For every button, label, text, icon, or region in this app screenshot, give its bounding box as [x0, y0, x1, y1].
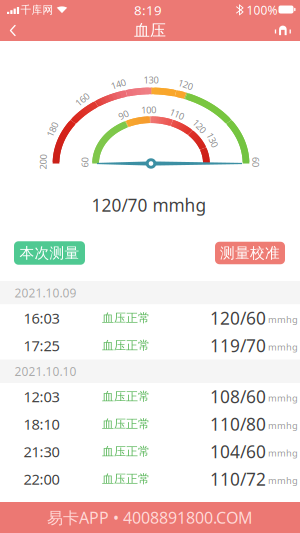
staticText: 90 [118, 108, 128, 121]
staticText: mmhg [268, 419, 298, 432]
staticText: 120/60 [210, 306, 266, 329]
staticText: 22:00 [23, 469, 59, 489]
staticText: 130 [205, 134, 220, 146]
staticText: mmhg [268, 313, 298, 326]
button[interactable]: 12:03 [0, 383, 300, 410]
button[interactable]: 测量校准 [215, 242, 285, 264]
staticText: 血压正常 [102, 472, 150, 486]
staticText: 110/72 [210, 467, 266, 490]
staticText: 血压正常 [102, 444, 150, 459]
staticText: mmhg [268, 474, 298, 487]
staticText: 200 [35, 156, 50, 168]
staticText: 测量校准 [220, 244, 280, 262]
staticText: 108/60 [210, 385, 266, 408]
staticText: 100 [141, 103, 156, 116]
staticText: 140 [111, 78, 126, 90]
staticText: 16:03 [23, 308, 59, 328]
staticText: 120/70 mmhg [91, 193, 206, 216]
button[interactable]: Back [0, 20, 30, 41]
button[interactable]: 22:00 [0, 465, 300, 493]
staticText: 血压 [134, 21, 166, 40]
staticText: 180 [45, 123, 60, 136]
staticText: 8:19 [134, 1, 162, 19]
button[interactable]: 本次测量 [14, 241, 85, 265]
button[interactable]: 21:30 [0, 438, 300, 465]
staticText: 血压正常 [102, 389, 150, 404]
staticText: 21:30 [23, 442, 59, 461]
button[interactable]: 18:10 [0, 410, 300, 438]
staticText: 130 [143, 74, 158, 86]
staticText: 17:25 [23, 336, 59, 355]
staticText: 120 [192, 120, 207, 132]
staticText: 2021.10.09 [14, 285, 76, 301]
staticText: 100% [246, 2, 277, 18]
staticText: 60 [251, 156, 261, 168]
button[interactable]: 17:25 [0, 332, 300, 359]
staticText: 本次测量 [19, 244, 79, 262]
staticText: 110/80 [210, 412, 266, 435]
staticText: 血压正常 [102, 311, 150, 325]
staticText: 160 [75, 93, 90, 106]
staticText: mmhg [268, 447, 298, 459]
staticText: 血压正常 [102, 417, 150, 431]
staticText: mmhg [268, 341, 298, 353]
staticText: 易卡APP • 4008891800.COM [47, 507, 253, 528]
staticText: 2021.10.10 [14, 363, 76, 379]
staticText: 104/60 [210, 440, 266, 463]
staticText: 119/70 [210, 334, 266, 357]
staticText: 120 [178, 78, 193, 91]
button[interactable]: 16:03 [0, 304, 300, 332]
staticText: 12:03 [23, 387, 59, 406]
staticText: mmhg [268, 392, 298, 404]
staticText: 千库网 [20, 3, 53, 16]
staticText: 血压正常 [102, 338, 150, 353]
button[interactable]: Connected device [273, 23, 293, 37]
staticText: 60 [80, 156, 90, 169]
staticText: 110 [169, 108, 184, 120]
staticText: 18:10 [23, 414, 59, 434]
